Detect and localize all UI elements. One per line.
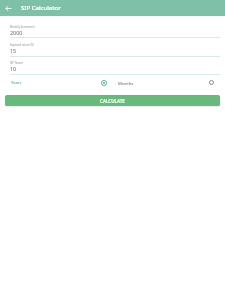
- staticText: CALCULATE: [100, 98, 125, 104]
- staticText: SIP Calculator: [21, 4, 61, 12]
- button[interactable]: CALCULATE: [5, 95, 220, 106]
- button[interactable]: Months: [205, 77, 217, 88]
- button[interactable]: Months: [114, 77, 154, 88]
- staticText: Expected return (%): [10, 43, 34, 47]
- staticText: 15: [10, 47, 17, 54]
- button[interactable]: Expected return (%): [10, 41, 220, 58]
- button[interactable]: Back: [0, 0, 16, 16]
- staticText: 2000: [10, 29, 23, 36]
- button[interactable]: Monthly Investment: [10, 23, 220, 39]
- staticText: 10: [10, 65, 17, 72]
- staticText: Monthly Investment: [10, 25, 35, 29]
- button[interactable]: Years: [5, 77, 50, 88]
- staticText: Years: [11, 80, 22, 86]
- button[interactable]: SIP Tenure: [10, 59, 220, 75]
- staticText: SIP Tenure: [10, 61, 23, 65]
- staticText: Months: [118, 80, 134, 86]
- button[interactable]: Years: [98, 77, 110, 88]
